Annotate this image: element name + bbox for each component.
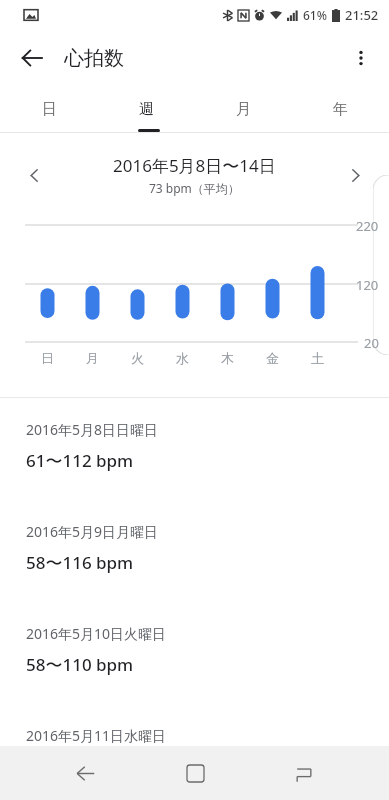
staticText: 21:52 bbox=[345, 6, 379, 24]
staticText: 2016年5月8日日曜日 bbox=[26, 420, 159, 439]
staticText: 月 bbox=[86, 350, 99, 366]
button[interactable]: Recent apps bbox=[280, 749, 328, 797]
staticText: 水 bbox=[176, 350, 189, 366]
staticText: 金 bbox=[266, 350, 279, 366]
staticText: 120 bbox=[356, 276, 379, 294]
staticText: 月 bbox=[236, 100, 251, 119]
staticText: 2016年5月10日火曜日 bbox=[26, 624, 167, 643]
button[interactable]: 日 bbox=[0, 86, 98, 132]
staticText: 心拍数 bbox=[64, 46, 124, 71]
button[interactable]: Back bbox=[61, 749, 109, 797]
button[interactable]: Next week bbox=[335, 155, 375, 195]
button[interactable]: 2016年5月9日月曜日 bbox=[0, 500, 389, 602]
staticText: 日 bbox=[41, 350, 54, 366]
button[interactable]: 週 bbox=[98, 86, 195, 132]
button[interactable]: Back bbox=[10, 36, 54, 80]
staticText: 2016年5月9日月曜日 bbox=[26, 522, 159, 541]
staticText: 年 bbox=[333, 100, 348, 119]
staticText: 2016年5月11日水曜日 bbox=[26, 726, 167, 745]
staticText: 週 bbox=[139, 100, 154, 119]
staticText: 61〜112 bpm bbox=[26, 449, 134, 472]
button[interactable]: 2016年5月8日日曜日 bbox=[0, 398, 389, 500]
staticText: 61% bbox=[303, 7, 327, 23]
button[interactable]: 2016年5月11日水曜日 bbox=[0, 704, 389, 773]
staticText: 58〜116 bpm bbox=[26, 551, 134, 574]
staticText: 火 bbox=[131, 350, 144, 366]
staticText: 58〜110 bpm bbox=[26, 653, 134, 676]
staticText: 木 bbox=[221, 350, 234, 366]
staticText: 土 bbox=[311, 350, 324, 366]
button[interactable]: 2016年5月10日火曜日 bbox=[0, 602, 389, 704]
staticText: 2016年5月8日〜14日 bbox=[113, 154, 276, 177]
staticText: 73 bpm（平均） bbox=[149, 180, 240, 196]
staticText: 220 bbox=[356, 217, 379, 235]
button[interactable]: 月 bbox=[195, 86, 292, 132]
button[interactable]: Home bbox=[171, 749, 219, 797]
staticText: 20 bbox=[364, 334, 379, 352]
button[interactable]: 年 bbox=[292, 86, 389, 132]
button[interactable]: More options bbox=[339, 36, 383, 80]
button[interactable]: Previous week bbox=[14, 155, 54, 195]
staticText: 日 bbox=[42, 100, 57, 119]
